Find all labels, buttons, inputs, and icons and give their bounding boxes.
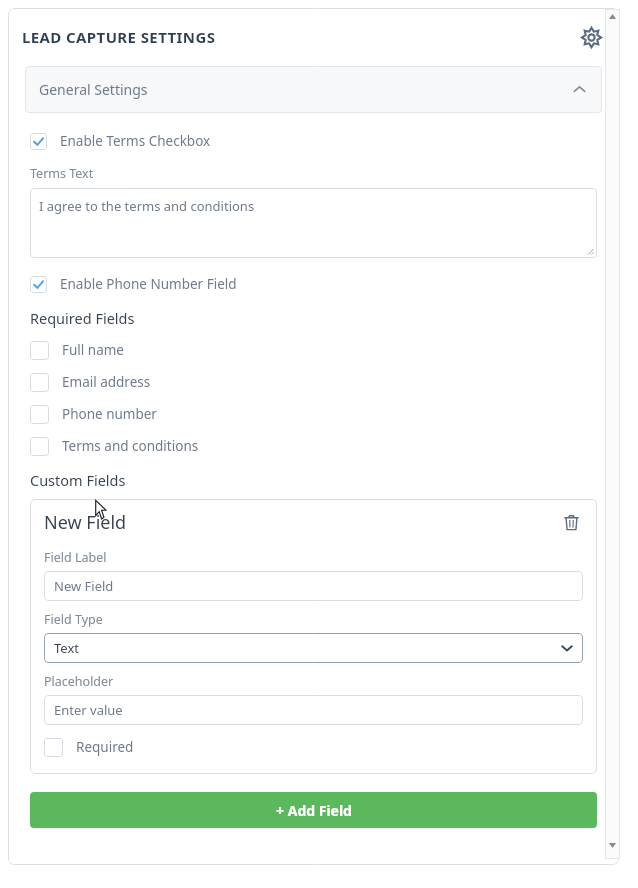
button[interactable]: I agree to the terms and conditions xyxy=(30,188,597,258)
staticText: New Field xyxy=(44,510,127,535)
button[interactable]: Full name xyxy=(30,334,599,366)
staticText: I agree to the terms and conditions xyxy=(39,197,255,215)
staticText: Enable Phone Number Field xyxy=(60,275,237,293)
button[interactable]: + Add Field xyxy=(30,792,597,828)
button[interactable]: Email address xyxy=(30,366,599,398)
staticText: Text xyxy=(54,639,79,657)
button[interactable]: General Settings xyxy=(25,66,602,113)
button[interactable]: Enable Terms Checkbox xyxy=(30,129,599,153)
staticText: Terms Text xyxy=(30,165,94,182)
button[interactable]: Enable Phone Number Field xyxy=(30,272,599,296)
staticText: Email address xyxy=(62,373,151,391)
button[interactable]: Settings xyxy=(575,21,607,53)
button[interactable]: Delete field xyxy=(557,508,585,536)
staticText: Terms and conditions xyxy=(62,437,199,455)
button[interactable]: New Field xyxy=(44,571,583,601)
staticText: Enter value xyxy=(54,701,123,719)
button[interactable]: Enter value xyxy=(44,695,583,725)
staticText: Field Label xyxy=(44,549,107,566)
staticText: Required Fields xyxy=(30,308,135,328)
staticText: Placeholder xyxy=(44,673,114,690)
button[interactable]: Terms and conditions xyxy=(30,430,599,462)
button[interactable]: Phone number xyxy=(30,398,599,430)
staticText: Field Type xyxy=(44,611,103,628)
staticText: Enable Terms Checkbox xyxy=(60,132,211,150)
button[interactable]: Text xyxy=(44,633,583,663)
button[interactable]: Required xyxy=(44,734,583,760)
staticText: Phone number xyxy=(62,405,157,423)
staticText: + Add Field xyxy=(276,801,352,820)
staticText: Custom Fields xyxy=(30,470,126,490)
staticText: New Field xyxy=(54,577,114,595)
staticText: LEAD CAPTURE SETTINGS xyxy=(22,27,216,47)
staticText: Full name xyxy=(62,341,124,359)
staticText: General Settings xyxy=(39,80,148,99)
staticText: Required xyxy=(76,738,134,756)
